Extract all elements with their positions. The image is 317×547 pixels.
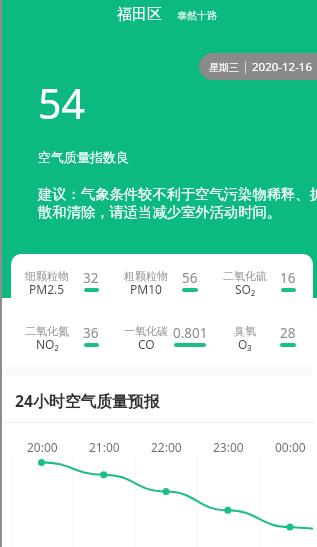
staticText: CO — [138, 336, 155, 352]
staticText: 56 — [182, 269, 198, 287]
staticText: 16 — [280, 269, 296, 287]
staticText: O₃ — [238, 336, 252, 352]
button[interactable]: 臭氧 — [200, 324, 290, 354]
staticText: NO₂ — [36, 336, 59, 352]
staticText: 2020-12-16 — [252, 59, 313, 75]
staticText: 20:00 — [27, 439, 58, 455]
staticText: 28 — [280, 324, 296, 342]
button[interactable]: 粗颗粒物 — [101, 269, 191, 299]
button[interactable]: 二氧化氮 — [2, 324, 92, 354]
staticText: 粗颗粒物 — [124, 269, 168, 283]
staticText: 36 — [83, 324, 99, 342]
staticText: 54 — [38, 75, 85, 131]
staticText: 星期三 — [209, 61, 239, 74]
staticText: 福田区 — [117, 5, 162, 24]
staticText: 二氧化硫 — [223, 269, 267, 283]
staticText: 臭氧 — [234, 324, 256, 338]
staticText: 23:00 — [213, 439, 244, 455]
button[interactable]: 细颗粒物 — [2, 269, 92, 299]
button[interactable]: 星期三 — [199, 53, 317, 80]
button[interactable]: 二氧化硫 — [200, 269, 290, 299]
staticText: 0.801 — [173, 324, 208, 342]
staticText: 细颗粒物 — [25, 269, 69, 283]
staticText: 00:00 — [275, 439, 306, 455]
staticText: 空气质量指数良 — [38, 149, 129, 165]
staticText: 22:00 — [151, 439, 182, 455]
staticText: 32 — [83, 269, 99, 287]
button[interactable]: 福田区 — [117, 5, 217, 24]
staticText: 24小时空气质量预报 — [15, 390, 160, 412]
button[interactable]: 24小时空气质量预报 — [15, 390, 160, 412]
staticText: 建议：气象条件较不利于空气污染物稀释、扩散和清除，请适当减少室外活动时间。 — [38, 185, 317, 221]
staticText: SO₂ — [235, 281, 256, 297]
staticText: 泰然十路 — [177, 9, 217, 22]
button[interactable]: 一氧化碳 — [101, 324, 191, 354]
staticText: 二氧化氮 — [25, 324, 69, 338]
staticText: PM10 — [130, 281, 162, 297]
staticText: 一氧化碳 — [124, 324, 168, 338]
staticText: PM2.5 — [29, 281, 65, 297]
staticText: 21:00 — [89, 439, 120, 455]
